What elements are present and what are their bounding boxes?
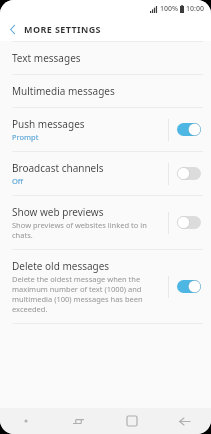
staticText: Broadcast channels [12, 161, 104, 175]
staticText: Multimedia messages [12, 84, 115, 98]
button[interactable]: Delete old messages [0, 250, 211, 323]
staticText: Text messages [12, 51, 81, 65]
staticText: 100% [160, 4, 178, 14]
button[interactable]: Toggle Show web previews [177, 216, 201, 229]
button[interactable]: Toggle Broadcast channels [177, 167, 201, 180]
button[interactable]: Show web previews [0, 196, 211, 249]
button[interactable]: Broadcast channels [0, 152, 211, 195]
staticText: Show web previews [12, 205, 104, 219]
staticText: MORE SETTINGS [24, 23, 101, 35]
button[interactable]: Recents [52, 408, 105, 434]
button[interactable]: Home [105, 408, 158, 434]
button[interactable]: Multimedia messages [0, 75, 211, 107]
button[interactable]: Toggle Push messages [177, 123, 201, 136]
button[interactable]: Back [158, 408, 211, 434]
staticText: Show previews of websites linked to in c… [12, 220, 162, 240]
button[interactable]: Menu [0, 408, 52, 434]
staticText: Delete old messages [12, 259, 110, 273]
button[interactable]: Back [0, 17, 24, 41]
button[interactable]: Toggle Delete old messages [177, 280, 201, 293]
staticText: Prompt [12, 132, 39, 142]
button[interactable]: Text messages [0, 42, 211, 74]
staticText: Delete the oldest message when the maxim… [12, 274, 162, 314]
staticText: 10:00 [186, 4, 204, 14]
staticText: Off [12, 176, 24, 186]
button[interactable]: Push messages [0, 108, 211, 151]
staticText: Push messages [12, 117, 85, 131]
